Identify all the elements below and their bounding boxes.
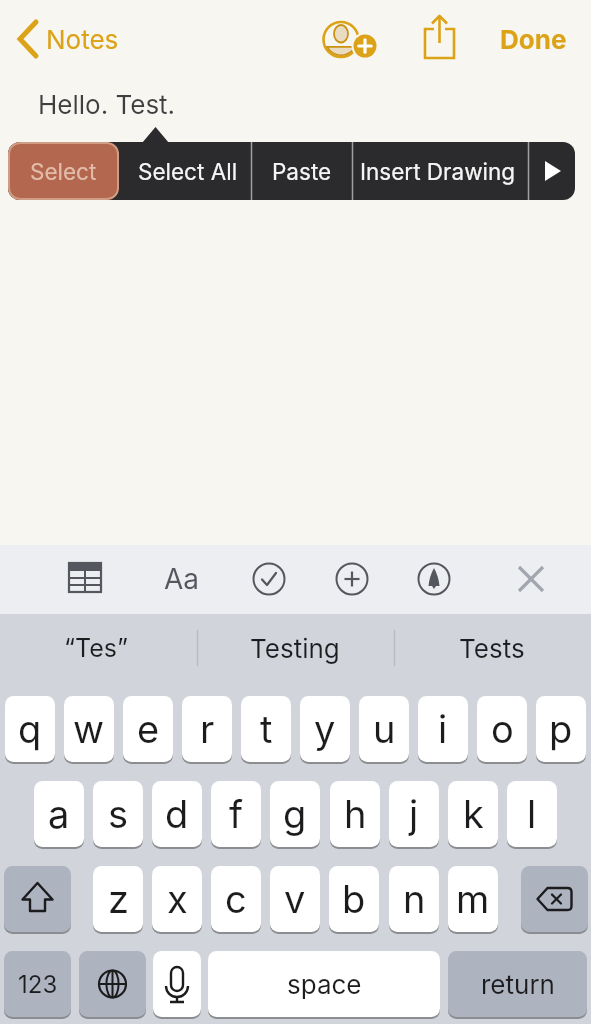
- staticText: y: [314, 706, 336, 752]
- staticText: Done: [500, 24, 567, 55]
- staticText: c: [225, 876, 247, 922]
- staticText: Insert Drawing: [360, 158, 516, 185]
- button[interactable]: e: [123, 696, 173, 762]
- button[interactable]: y: [300, 696, 350, 762]
- button[interactable]: s: [93, 781, 143, 847]
- button[interactable]: c: [211, 866, 261, 932]
- button[interactable]: f: [211, 781, 261, 847]
- staticText: f: [229, 791, 244, 837]
- staticText: o: [491, 706, 514, 752]
- staticText: q: [18, 706, 42, 752]
- button[interactable]: j: [389, 781, 439, 847]
- button[interactable]: [4, 866, 71, 932]
- staticText: space: [287, 969, 362, 1000]
- button[interactable]: Paste: [251, 142, 352, 200]
- button[interactable]: b: [329, 866, 379, 932]
- button[interactable]: [64, 558, 106, 600]
- staticText: Paste: [272, 158, 332, 185]
- button[interactable]: p: [536, 696, 586, 762]
- staticText: m: [456, 876, 490, 922]
- button[interactable]: space: [208, 951, 440, 1017]
- button[interactable]: [153, 951, 201, 1017]
- button[interactable]: [248, 558, 290, 600]
- button[interactable]: h: [330, 781, 380, 847]
- staticText: s: [108, 791, 129, 837]
- button[interactable]: t: [241, 696, 291, 762]
- staticText: l: [527, 791, 537, 837]
- staticText: x: [167, 876, 188, 922]
- button[interactable]: [316, 14, 380, 66]
- button[interactable]: Tests: [417, 626, 567, 670]
- button[interactable]: [331, 558, 373, 600]
- staticText: d: [165, 791, 189, 837]
- staticText: Notes: [46, 24, 119, 55]
- staticText: Testing: [250, 633, 340, 664]
- staticText: a: [48, 791, 70, 837]
- button[interactable]: o: [477, 696, 527, 762]
- button[interactable]: q: [5, 696, 55, 762]
- staticText: r: [200, 706, 215, 752]
- staticText: Aa: [164, 562, 200, 596]
- button[interactable]: Insert Drawing: [352, 142, 523, 200]
- button[interactable]: [528, 142, 575, 200]
- button[interactable]: [79, 951, 146, 1017]
- staticText: Select: [30, 158, 97, 185]
- staticText: g: [283, 791, 307, 837]
- staticText: n: [403, 876, 426, 922]
- button[interactable]: [521, 866, 588, 932]
- staticText: Select All: [138, 158, 238, 185]
- staticText: h: [344, 791, 367, 837]
- staticText: p: [549, 706, 573, 752]
- button[interactable]: i: [418, 696, 468, 762]
- button[interactable]: g: [270, 781, 320, 847]
- button[interactable]: Select All: [125, 142, 251, 200]
- button[interactable]: Notes: [12, 17, 142, 61]
- button[interactable]: k: [448, 781, 498, 847]
- button[interactable]: a: [34, 781, 84, 847]
- staticText: w: [73, 706, 105, 752]
- staticText: k: [463, 791, 484, 837]
- button[interactable]: “Tes”: [21, 626, 171, 670]
- button[interactable]: Testing: [220, 626, 370, 670]
- button[interactable]: n: [389, 866, 439, 932]
- staticText: “Tes”: [64, 633, 128, 663]
- button[interactable]: u: [359, 696, 409, 762]
- staticText: t: [260, 706, 273, 752]
- staticText: j: [409, 791, 419, 837]
- button[interactable]: Done: [500, 17, 590, 61]
- staticText: e: [137, 706, 160, 752]
- staticText: return: [481, 969, 555, 1000]
- button[interactable]: 123: [4, 951, 71, 1017]
- button[interactable]: [414, 8, 466, 64]
- button[interactable]: m: [448, 866, 498, 932]
- button[interactable]: x: [152, 866, 202, 932]
- staticText: z: [108, 876, 129, 922]
- staticText: b: [342, 876, 366, 922]
- button[interactable]: [510, 558, 552, 600]
- button[interactable]: w: [64, 696, 114, 762]
- staticText: 123: [18, 970, 58, 999]
- staticText: v: [284, 876, 306, 922]
- button[interactable]: z: [93, 866, 143, 932]
- button[interactable]: l: [507, 781, 557, 847]
- button[interactable]: [413, 558, 455, 600]
- button[interactable]: d: [152, 781, 202, 847]
- staticText: Hello. Test.: [38, 89, 176, 120]
- button[interactable]: return: [448, 951, 587, 1017]
- button[interactable]: v: [270, 866, 320, 932]
- staticText: u: [373, 706, 396, 752]
- button[interactable]: Select: [8, 142, 119, 200]
- staticText: i: [438, 706, 448, 752]
- button[interactable]: Aa: [156, 557, 208, 601]
- button[interactable]: r: [182, 696, 232, 762]
- staticText: Tests: [459, 633, 525, 664]
